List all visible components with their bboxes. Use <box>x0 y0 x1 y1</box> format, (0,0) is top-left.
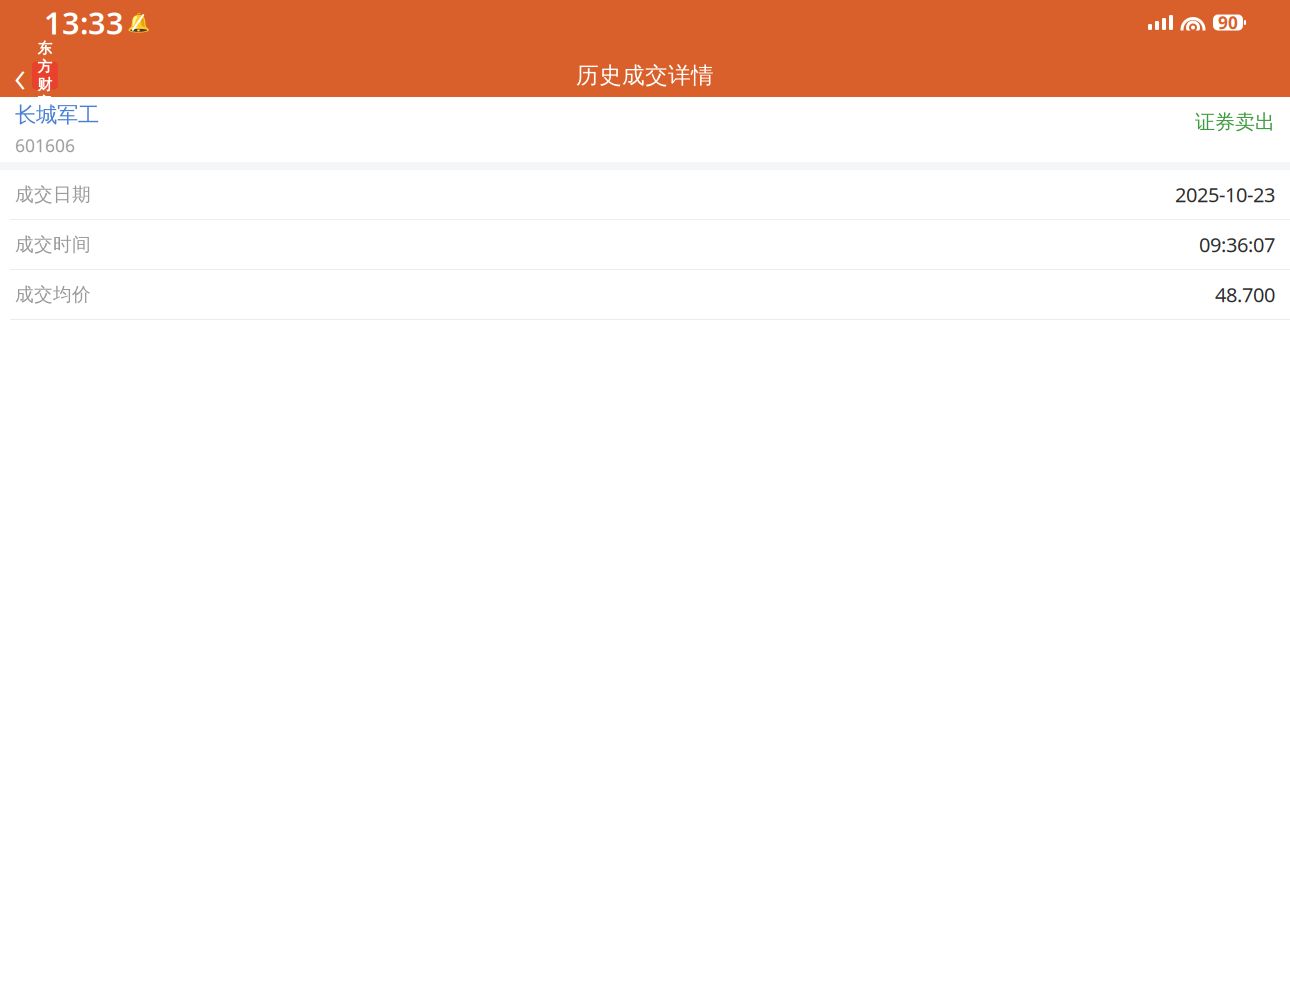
staticText: 成交日期 <box>15 183 91 206</box>
staticText: 长城军工 <box>15 102 99 128</box>
staticText: 09:36:07 <box>1199 231 1275 258</box>
staticText: 13:33 <box>44 2 124 43</box>
staticText: 🔔 <box>126 12 149 33</box>
staticText: ‹ <box>14 45 26 106</box>
staticText: 2025-10-23 <box>1175 181 1275 208</box>
staticText: 成交时间 <box>15 233 91 256</box>
staticText: 90 <box>1218 11 1238 34</box>
staticText: 601606 <box>15 134 75 157</box>
staticText: 历史成交详情 <box>576 62 714 89</box>
staticText: 成交均价 <box>15 283 91 306</box>
staticText: 证券卖出 <box>1195 110 1275 134</box>
staticText: 48.700 <box>1215 281 1275 308</box>
staticText: 东方 <box>37 39 52 75</box>
staticText: 财富 <box>37 75 52 111</box>
button[interactable]: Back <box>0 39 58 112</box>
